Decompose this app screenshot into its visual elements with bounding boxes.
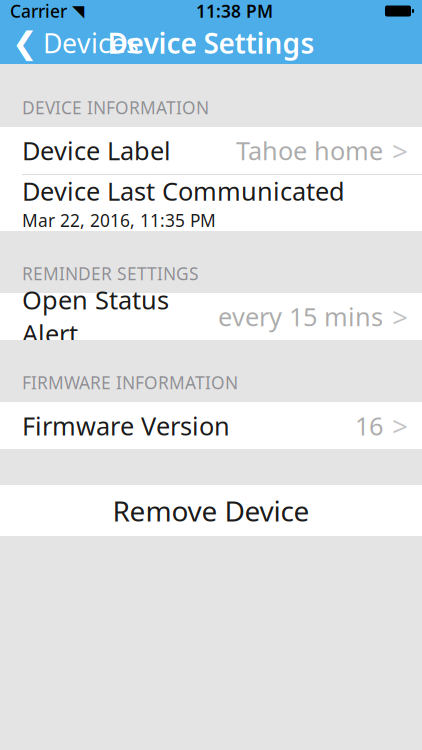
- staticText: Firmware Version: [22, 409, 230, 442]
- staticText: 16: [355, 409, 383, 442]
- staticText: 11:38 PM: [196, 0, 273, 22]
- staticText: Devices: [43, 25, 139, 61]
- staticText: >: [392, 132, 408, 169]
- staticText: Remove Device: [112, 492, 309, 529]
- button[interactable]: ❮: [0, 19, 139, 67]
- staticText: Carrier: [10, 0, 67, 22]
- staticText: >: [392, 407, 408, 444]
- staticText: every 15 mins: [218, 300, 383, 333]
- staticText: Mar 22, 2016, 11:35 PM: [22, 209, 216, 232]
- staticText: Device Settings: [107, 24, 314, 62]
- staticText: Tahoe home: [236, 134, 383, 167]
- staticText: Device Last Communicated: [22, 174, 345, 208]
- staticText: REMINDER SETTINGS: [22, 262, 199, 285]
- staticText: Open Status Alert: [22, 283, 169, 350]
- staticText: DEVICE INFORMATION: [22, 96, 209, 119]
- staticText: Device Label: [22, 134, 171, 167]
- staticText: FIRMWARE INFORMATION: [22, 371, 238, 394]
- button[interactable]: Remove Device: [0, 485, 422, 536]
- button[interactable]: Device Label: [0, 127, 422, 174]
- staticText: ◥: [72, 2, 84, 20]
- staticText: >: [392, 298, 408, 335]
- button[interactable]: Firmware Version: [0, 402, 422, 449]
- button[interactable]: Open Status Alert: [0, 293, 422, 340]
- staticText: ❮: [12, 26, 38, 60]
